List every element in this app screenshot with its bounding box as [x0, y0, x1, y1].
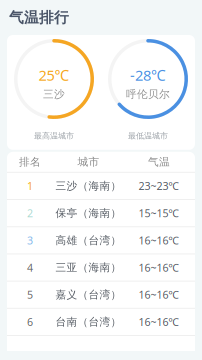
- button[interactable]: 6: [7, 309, 195, 335]
- staticText: 三沙（海南）: [55, 179, 121, 192]
- staticText: 5: [27, 288, 33, 302]
- staticText: 台南（台湾）: [55, 315, 121, 328]
- staticText: 15~15℃: [138, 206, 179, 220]
- staticText: 三亚（海南）: [55, 261, 121, 274]
- staticText: 23~23℃: [138, 179, 179, 193]
- button[interactable]: 1: [7, 173, 195, 199]
- staticText: 6: [27, 315, 33, 329]
- button[interactable]: 3: [7, 227, 195, 253]
- staticText: 3: [27, 233, 33, 247]
- staticText: 城市: [77, 155, 99, 168]
- staticText: 最高温城市: [34, 131, 74, 141]
- button[interactable]: 4: [7, 254, 195, 281]
- staticText: 16~16℃: [138, 260, 179, 275]
- staticText: 气温排行: [9, 8, 69, 26]
- staticText: 最低温城市: [128, 131, 168, 141]
- button[interactable]: 5: [7, 282, 195, 308]
- staticText: 1: [27, 179, 33, 193]
- staticText: 呼伦贝尔: [126, 88, 170, 101]
- staticText: 16~16℃: [138, 233, 179, 247]
- staticText: 高雄（台湾）: [55, 234, 121, 247]
- staticText: 16~16℃: [138, 288, 179, 302]
- staticText: 25℃: [38, 65, 69, 85]
- button[interactable]: 2: [7, 200, 195, 226]
- staticText: 排名: [19, 155, 41, 168]
- staticText: -28℃: [130, 65, 166, 85]
- staticText: 16~16℃: [138, 315, 179, 329]
- staticText: 嘉义（台湾）: [55, 288, 121, 301]
- staticText: 2: [27, 206, 33, 220]
- staticText: 保亭（海南）: [55, 207, 121, 220]
- staticText: 气温: [148, 155, 170, 168]
- staticText: 4: [27, 260, 33, 275]
- staticText: 三沙: [43, 88, 65, 101]
